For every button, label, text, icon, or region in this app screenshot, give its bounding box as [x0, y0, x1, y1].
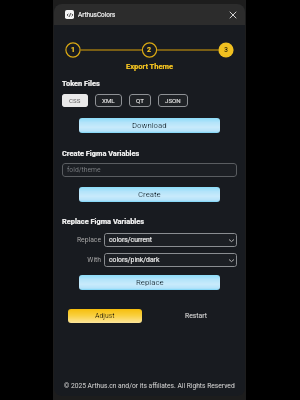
button[interactable]: colors/current	[104, 233, 237, 247]
staticText: 3	[224, 46, 229, 54]
staticText: colors/pink/dark	[109, 256, 160, 264]
staticText: XML	[102, 97, 115, 104]
staticText: Replace	[62, 236, 101, 244]
staticText: Restart	[185, 312, 207, 320]
staticText: Replace Figma Variables	[62, 217, 145, 226]
staticText: 1	[71, 46, 76, 54]
staticText: 2	[147, 46, 152, 54]
staticText: With	[62, 256, 101, 264]
button[interactable]: CSS	[62, 94, 88, 107]
staticText: Create Figma Variables	[62, 149, 140, 158]
staticText: Token Files	[62, 79, 100, 88]
staticText: fold/theme	[67, 166, 101, 174]
staticText: CSS	[69, 97, 81, 104]
button[interactable]: Close	[226, 8, 240, 22]
staticText: Download	[132, 121, 167, 130]
button[interactable]: Replace	[79, 275, 220, 290]
button[interactable]: QT	[129, 94, 151, 107]
staticText: colors/current	[109, 236, 153, 244]
staticText: Adjust	[95, 312, 115, 320]
staticText: Replace	[136, 278, 164, 287]
staticText: Export Theme	[62, 62, 237, 71]
button[interactable]: colors/pink/dark	[104, 253, 237, 267]
button[interactable]: XML	[95, 94, 122, 107]
button[interactable]: JSON	[158, 94, 188, 107]
button[interactable]: Adjust	[68, 309, 142, 323]
staticText: ArthusColors	[78, 11, 116, 19]
button[interactable]: fold/theme	[62, 163, 237, 177]
staticText: QT	[136, 97, 144, 104]
staticText: © 2025 Arthus.cn and/or its affiliates. …	[64, 382, 235, 390]
button[interactable]: Restart	[174, 310, 218, 322]
staticText: JSON	[165, 97, 181, 104]
button[interactable]: Create	[79, 187, 220, 202]
button[interactable]: Download	[79, 118, 220, 133]
staticText: Create	[138, 190, 161, 199]
